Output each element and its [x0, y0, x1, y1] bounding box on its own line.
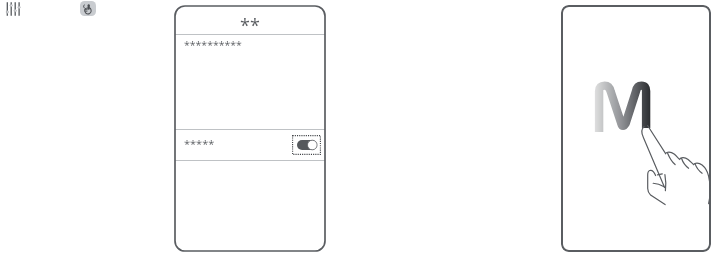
button[interactable]: *****: [175, 130, 325, 160]
staticText: **: [240, 13, 260, 34]
button[interactable]: Tune settings: [4, 0, 24, 20]
staticText: **********: [184, 38, 242, 52]
button[interactable]: Toggle switch, on: [292, 135, 321, 155]
staticText: *****: [184, 136, 215, 151]
button[interactable]: **********: [175, 35, 325, 129]
button[interactable]: Tap gesture: [80, 1, 96, 16]
